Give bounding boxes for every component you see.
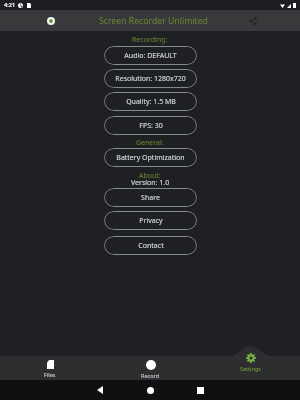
- button[interactable]: Recents: [182, 380, 218, 400]
- staticText: Screen Recorder Unlimited: [99, 15, 208, 27]
- staticText: Contact: [138, 241, 164, 251]
- button[interactable]: Home: [132, 380, 168, 400]
- staticText: About:: [139, 171, 161, 181]
- staticText: Audio: DEFAULT: [124, 51, 177, 61]
- button[interactable]: Settings: [226, 353, 274, 373]
- button[interactable]: Contact: [104, 236, 197, 255]
- staticText: Record: [141, 372, 160, 379]
- staticText: Quality: 1.5 MB: [126, 97, 176, 107]
- button[interactable]: Share: [244, 12, 261, 29]
- button[interactable]: FPS: 30: [104, 116, 197, 135]
- button[interactable]: Privacy: [104, 211, 197, 230]
- staticText: General:: [136, 138, 164, 148]
- button[interactable]: Files: [26, 360, 74, 380]
- button[interactable]: Record: [126, 360, 174, 380]
- staticText: Battery Optimization: [116, 153, 185, 163]
- staticText: Privacy: [139, 216, 163, 226]
- staticText: Resolution: 1280x720: [115, 74, 186, 84]
- staticText: FPS: 30: [139, 121, 163, 131]
- button[interactable]: Share: [104, 188, 197, 207]
- staticText: Recording:: [132, 35, 168, 45]
- button[interactable]: Quality: 1.5 MB: [104, 92, 197, 111]
- button[interactable]: Resolution: 1280x720: [104, 69, 197, 88]
- staticText: Share: [141, 193, 160, 203]
- button[interactable]: Back: [82, 380, 118, 400]
- staticText: 4:21: [4, 1, 16, 9]
- staticText: Settings: [240, 365, 261, 372]
- button[interactable]: Audio: DEFAULT: [104, 46, 197, 65]
- staticText: Version: 1.0: [131, 178, 170, 188]
- staticText: Files: [44, 371, 56, 378]
- button[interactable]: Battery Optimization: [104, 148, 197, 167]
